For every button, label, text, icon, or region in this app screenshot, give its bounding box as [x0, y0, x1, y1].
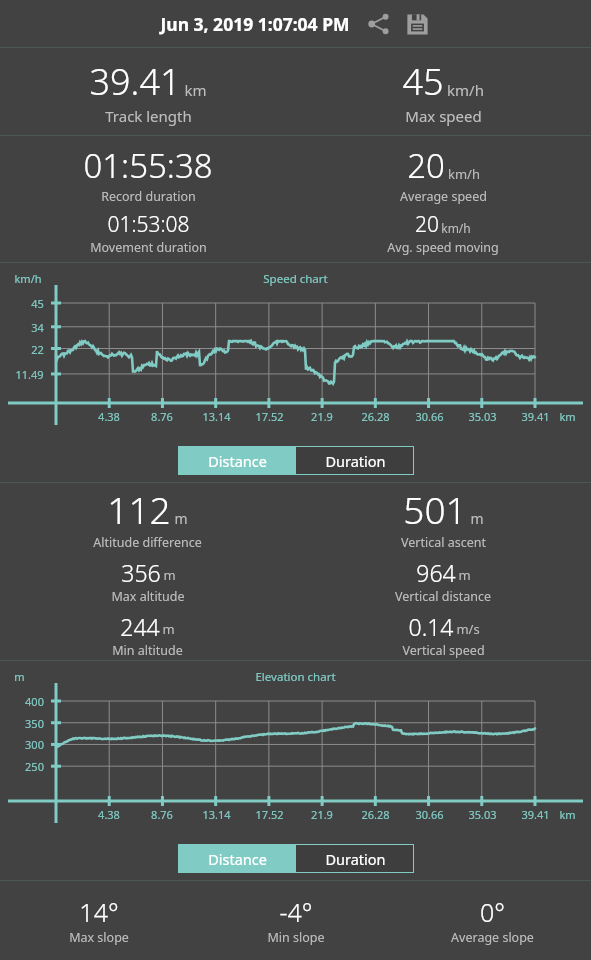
staticText: Distance: [208, 451, 267, 471]
staticText: 30.66: [415, 409, 444, 424]
staticText: 21.9: [311, 409, 333, 424]
staticText: 244: [120, 611, 160, 642]
staticText: Min altitude: [112, 642, 183, 659]
staticText: Record duration: [101, 188, 196, 205]
staticText: km/h: [447, 80, 484, 100]
staticText: Track length: [105, 106, 192, 126]
staticText: km: [559, 807, 576, 822]
staticText: Speed chart: [263, 271, 328, 287]
staticText: 350: [25, 716, 44, 731]
staticText: 39.41: [89, 57, 181, 106]
staticText: Distance: [208, 849, 267, 869]
staticText: Min slope: [267, 929, 325, 946]
staticText: 39.41: [521, 807, 550, 822]
staticText: km/h: [441, 220, 471, 236]
staticText: Average slope: [451, 929, 534, 946]
staticText: 4.38: [98, 409, 120, 424]
staticText: m: [458, 566, 471, 584]
staticText: 11.49: [15, 367, 44, 382]
button[interactable]: Duration: [296, 446, 414, 475]
staticText: 501: [403, 484, 467, 534]
staticText: m: [14, 669, 25, 684]
staticText: 34: [31, 320, 44, 335]
staticText: 17.52: [255, 409, 284, 424]
staticText: Jun 3, 2019 1:07:04 PM: [160, 12, 350, 36]
staticText: m: [470, 509, 484, 528]
staticText: Max slope: [69, 929, 129, 946]
staticText: 13.14: [202, 807, 231, 822]
staticText: 964: [416, 557, 456, 588]
staticText: 20: [415, 210, 439, 239]
staticText: Elevation chart: [255, 669, 336, 685]
staticText: 356: [121, 557, 161, 588]
staticText: km: [184, 80, 207, 100]
staticText: 17.52: [255, 807, 284, 822]
staticText: 13.14: [202, 409, 231, 424]
staticText: 35.03: [468, 409, 497, 424]
staticText: Average speed: [400, 188, 487, 205]
staticText: Max speed: [405, 106, 482, 126]
staticText: m: [162, 620, 175, 638]
staticText: 0°: [480, 895, 505, 929]
button[interactable]: Distance: [178, 446, 296, 475]
staticText: Vertical distance: [395, 588, 491, 605]
button[interactable]: Save: [402, 9, 432, 39]
button[interactable]: Share: [364, 9, 394, 39]
staticText: Avg. speed moving: [387, 239, 499, 256]
staticText: 0.14: [408, 611, 454, 642]
staticText: Duration: [325, 849, 386, 869]
staticText: km/h: [14, 271, 42, 286]
staticText: Altitude difference: [93, 534, 202, 551]
staticText: km: [559, 409, 576, 424]
staticText: 30.66: [415, 807, 444, 822]
staticText: 22: [31, 342, 44, 357]
staticText: 300: [25, 737, 44, 752]
staticText: Max altitude: [111, 588, 185, 605]
staticText: 250: [25, 759, 44, 774]
staticText: 39.41: [521, 409, 550, 424]
staticText: Vertical ascent: [401, 534, 486, 551]
button[interactable]: Distance: [178, 844, 296, 873]
staticText: 14°: [79, 895, 119, 929]
staticText: -4°: [279, 895, 313, 929]
staticText: Duration: [325, 451, 386, 471]
staticText: m: [174, 509, 188, 528]
staticText: 26.28: [361, 807, 390, 822]
staticText: m/s: [456, 620, 480, 638]
staticText: 20: [407, 143, 445, 188]
staticText: Vertical speed: [402, 642, 485, 659]
button[interactable]: Duration: [296, 844, 414, 873]
staticText: 8.76: [151, 807, 173, 822]
staticText: 4.38: [98, 807, 120, 822]
staticText: 01:53:08: [107, 210, 190, 239]
staticText: Movement duration: [90, 239, 207, 256]
staticText: 45: [402, 57, 444, 106]
staticText: m: [163, 566, 176, 584]
staticText: 45: [31, 296, 44, 311]
staticText: km/h: [448, 165, 480, 183]
staticText: 26.28: [361, 409, 390, 424]
staticText: 01:55:38: [83, 143, 213, 188]
staticText: 21.9: [311, 807, 333, 822]
staticText: 400: [25, 694, 44, 709]
staticText: 35.03: [468, 807, 497, 822]
staticText: 8.76: [151, 409, 173, 424]
staticText: 112: [107, 484, 171, 534]
